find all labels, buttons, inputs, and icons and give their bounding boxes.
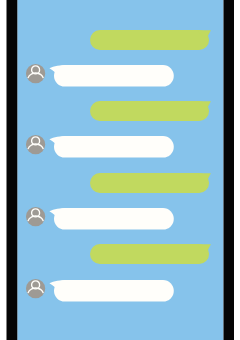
button[interactable]: Contact avatar 4 <box>26 279 45 298</box>
button[interactable]: Sent message 1 <box>88 28 213 52</box>
button[interactable]: Contact avatar 3 <box>26 207 45 226</box>
button[interactable]: Received message 3 <box>48 206 176 232</box>
button[interactable]: Received message 2 <box>48 134 176 160</box>
button[interactable]: Received message 4 <box>48 278 176 304</box>
button[interactable]: Sent message 2 <box>88 99 213 123</box>
button[interactable]: Contact avatar 2 <box>26 135 45 154</box>
button[interactable]: Received message 1 <box>48 63 176 89</box>
button[interactable]: Sent message 3 <box>88 171 213 195</box>
button[interactable]: Sent message 4 <box>88 242 213 266</box>
button[interactable]: Contact avatar 1 <box>26 64 45 83</box>
